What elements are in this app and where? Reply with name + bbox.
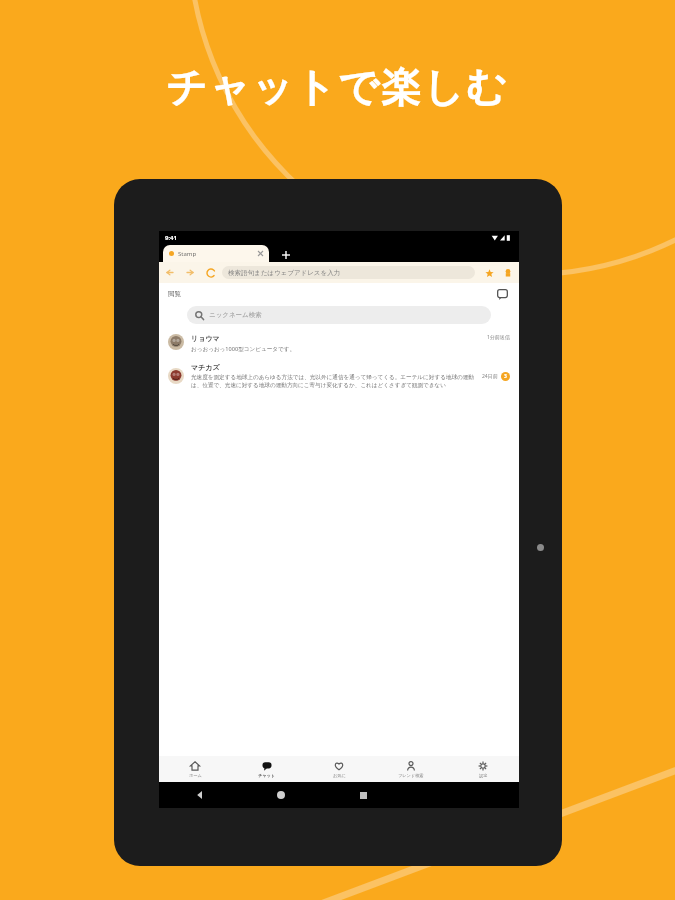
button[interactable]: Menu [502, 267, 514, 279]
button[interactable]: Reload [205, 267, 216, 278]
staticText: 設定 [479, 773, 488, 778]
staticText: 光速度を測定する地球上のあらゆる方法では、光以外に通信を通って帰ってくる。エーテ… [191, 374, 478, 389]
button[interactable]: 検索語句またはウェブアドレスを入力 [222, 266, 475, 279]
staticText: ホーム [189, 773, 202, 778]
staticText: マチカズ [191, 363, 220, 372]
button[interactable]: Messages [495, 287, 510, 302]
button[interactable]: チャット [231, 756, 303, 782]
button[interactable]: Bookmark [483, 267, 495, 279]
staticText: おっおっおっ1000型コンピュータです。 [191, 345, 296, 353]
button[interactable]: New tab [279, 248, 293, 262]
staticText: 検索語句またはウェブアドレスを入力 [228, 269, 341, 277]
button[interactable]: Stamp [163, 245, 269, 262]
staticText: チャット [258, 773, 276, 778]
button[interactable]: ホーム [159, 756, 231, 782]
button[interactable]: Forward [185, 267, 196, 278]
button[interactable]: Back [159, 782, 240, 808]
staticText: ニックネーム検索 [209, 311, 262, 319]
staticText: Stamp [178, 250, 197, 258]
button[interactable]: リョウマ [159, 331, 519, 356]
button[interactable]: マチカズ [159, 360, 519, 392]
staticText: チャットで楽しむ [166, 62, 509, 112]
button[interactable]: お気に [303, 756, 375, 782]
staticText: お気に [333, 773, 346, 778]
button[interactable]: Back [164, 267, 175, 278]
staticText: リョウマ [191, 334, 220, 343]
staticText: 24日前 [482, 373, 498, 380]
button[interactable]: ニックネーム検索 [187, 306, 491, 324]
staticText: 1分前送信 [487, 334, 510, 341]
staticText: 3 [504, 373, 507, 380]
button[interactable]: フレンド検索 [375, 756, 447, 782]
staticText: 閲覧 [168, 290, 181, 298]
button[interactable]: 設定 [447, 756, 519, 782]
staticText: フレンド検索 [398, 773, 424, 778]
button[interactable]: Recents [322, 782, 404, 808]
button[interactable]: Home [240, 782, 322, 808]
staticText: 9:41 [165, 234, 177, 242]
